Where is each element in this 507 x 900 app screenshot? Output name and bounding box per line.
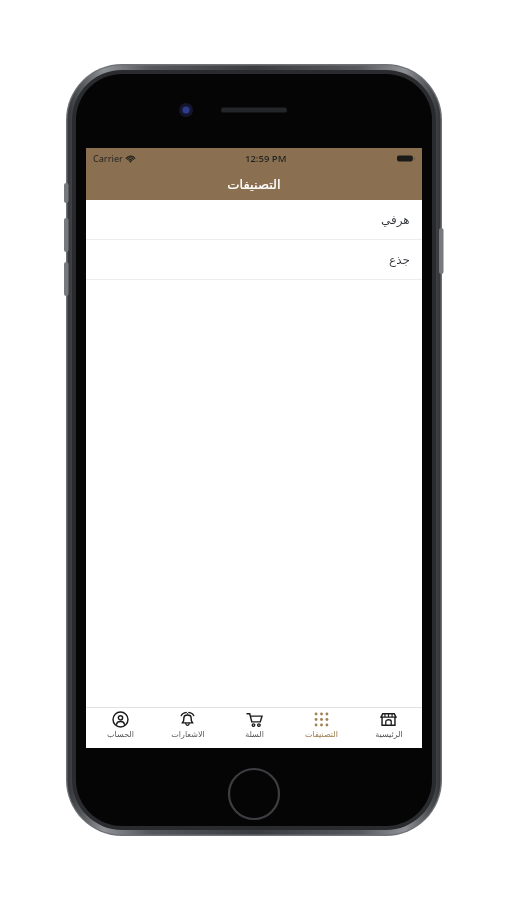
button[interactable]: السلة [221,708,288,748]
button[interactable]: الاشعارات [154,708,221,748]
staticText: هرفي [381,213,410,227]
staticText: Carrier [93,152,123,164]
staticText: جذع [389,253,410,267]
staticText: الحساب [107,730,134,739]
button[interactable]: الحساب [86,708,154,748]
staticText: السلة [245,730,264,739]
staticText: التصنيفات [227,177,281,192]
button[interactable]: هرفي [86,200,422,240]
staticText: 12:59 PM [245,152,287,165]
button[interactable]: جذع [86,240,422,280]
button[interactable]: التصنيفات [288,708,355,748]
staticText: التصنيفات [305,730,338,739]
staticText: الاشعارات [171,730,205,739]
button[interactable]: الرئيسية [355,708,422,748]
staticText: الرئيسية [375,730,403,739]
